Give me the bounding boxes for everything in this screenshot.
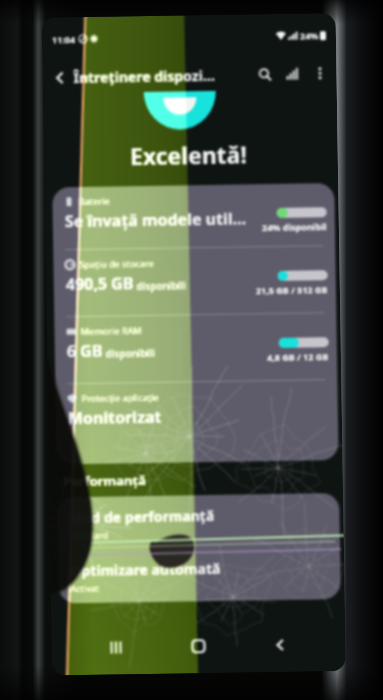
- button[interactable]: More options: [310, 64, 329, 82]
- button[interactable]: Protecție aplicație: [55, 380, 339, 464]
- staticText: Spațiu de stocare: [79, 257, 155, 270]
- staticText: 11:04: [52, 33, 76, 45]
- button[interactable]: Search: [254, 64, 275, 84]
- staticText: Se învață modele util...: [65, 207, 247, 232]
- button[interactable]: Spațiu de stocare: [53, 246, 336, 316]
- staticText: Standard: [70, 529, 109, 541]
- staticText: 24% disponibil: [262, 220, 327, 233]
- button[interactable]: Back: [48, 66, 71, 88]
- staticText: 21,5 GB / 512 GB: [256, 283, 328, 296]
- staticText: disponibili: [103, 346, 155, 361]
- staticText: 490,5 GB: [66, 272, 134, 295]
- staticText: disponibili: [134, 278, 186, 293]
- staticText: Întreținere dispozi...: [73, 66, 216, 87]
- staticText: Mod de performanță: [69, 506, 215, 527]
- button[interactable]: Back: [263, 628, 298, 662]
- staticText: Baterie: [78, 195, 111, 207]
- staticText: 6 GB: [67, 340, 103, 362]
- button[interactable]: Mod de performanță: [57, 493, 340, 550]
- button[interactable]: Recents: [99, 630, 134, 665]
- staticText: 4,8 GB / 12 GB: [267, 350, 329, 363]
- button[interactable]: Usage statistics: [282, 63, 303, 84]
- button[interactable]: Optimizare automată: [58, 546, 341, 603]
- staticText: Monitorizat: [68, 406, 162, 429]
- staticText: Activat: [70, 582, 100, 594]
- staticText: Memorie RAM: [80, 324, 143, 337]
- staticText: Excelentă!: [129, 138, 248, 171]
- button[interactable]: Baterie: [52, 183, 335, 249]
- button[interactable]: Home: [181, 629, 216, 663]
- staticText: Protecție aplicație: [81, 391, 160, 404]
- staticText: Optimizare automată: [70, 559, 221, 580]
- staticText: Performanță: [63, 471, 146, 490]
- button[interactable]: Memorie RAM: [54, 313, 337, 383]
- staticText: 24%: [300, 29, 319, 42]
